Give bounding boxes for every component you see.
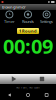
staticText: BoxingTimer bbox=[2, 4, 26, 10]
button[interactable]: Back bbox=[0, 90, 19, 100]
button[interactable]: Timer bbox=[0, 11, 19, 23]
button[interactable]: Start bbox=[0, 74, 28, 84]
staticText: No Pain, No Gain bbox=[16, 86, 40, 89]
button[interactable]: Home bbox=[19, 90, 37, 100]
button[interactable]: Recents bbox=[37, 90, 56, 100]
staticText: Settings bbox=[40, 19, 53, 24]
button[interactable]: Stop bbox=[28, 74, 56, 84]
staticText: 00:09 bbox=[3, 33, 53, 59]
staticText: Rounds bbox=[22, 19, 34, 24]
staticText: 1 Round bbox=[19, 28, 37, 34]
button[interactable]: Settings bbox=[37, 11, 56, 23]
staticText: Timer bbox=[4, 19, 15, 24]
button[interactable]: Rounds bbox=[19, 11, 37, 23]
